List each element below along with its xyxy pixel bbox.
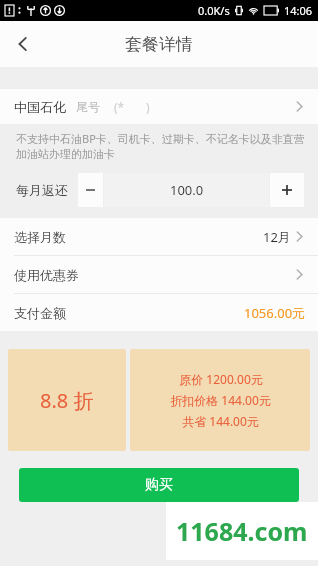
button[interactable]: 使用优惠券 [0, 256, 318, 293]
staticText: 尾号 [76, 99, 100, 114]
staticText: 使用优惠券 [14, 267, 79, 283]
staticText: 12月 [263, 228, 291, 246]
staticText: 每月返还 [16, 182, 68, 198]
staticText: 共省 144.00元 [182, 413, 259, 429]
button[interactable]: Decrease [78, 173, 103, 207]
staticText: 1056.00元 [244, 304, 306, 322]
staticText: 100.0 [170, 181, 204, 199]
button[interactable]: Increase [270, 173, 304, 207]
button[interactable]: 支付金额 [0, 294, 318, 331]
staticText: (* ) [114, 99, 150, 115]
staticText: 选择月数 [14, 229, 66, 245]
staticText: 不支持中石油BP卡、司机卡、过期卡、不记名卡以及非直营加油站办理的加油卡 [16, 131, 306, 161]
button[interactable]: 购买 [19, 468, 299, 502]
staticText: 11684.com [176, 514, 308, 548]
staticText: 购买 [145, 476, 173, 494]
staticText: 0.0K/s [198, 3, 230, 18]
staticText: 支付金额 [14, 305, 66, 321]
button[interactable]: 选择月数 [0, 218, 318, 255]
staticText: 原价 1200.00元 [179, 371, 263, 387]
button[interactable]: 中国石化 [0, 89, 318, 124]
button[interactable]: Back [0, 21, 46, 67]
staticText: 8.8 折 [40, 387, 94, 414]
staticText: 折扣价格 144.00元 [170, 392, 271, 408]
staticText: 套餐详情 [125, 34, 193, 55]
staticText: 14:06 [284, 3, 313, 18]
staticText: 中国石化 [14, 99, 66, 115]
